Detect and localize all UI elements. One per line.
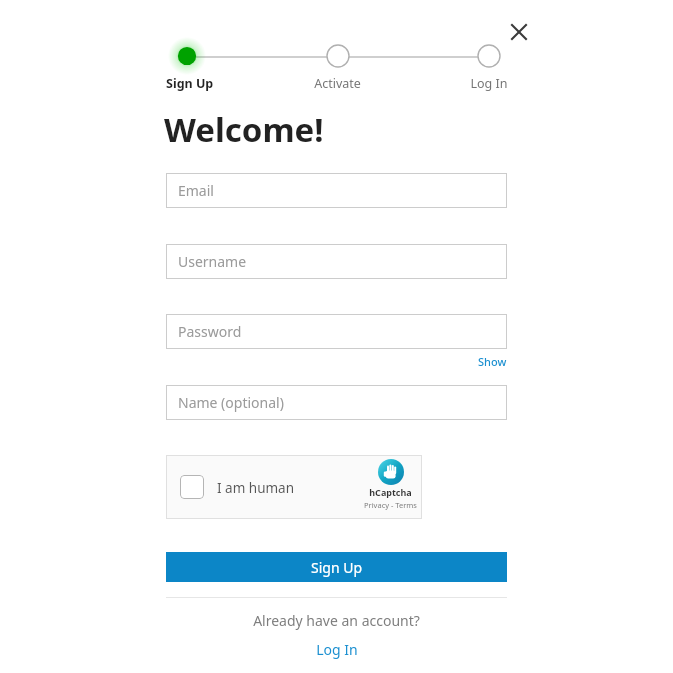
button[interactable]: Password xyxy=(166,314,507,349)
button[interactable]: Name (optional) xyxy=(166,385,507,420)
staticText: Password xyxy=(178,322,242,341)
staticText: Privacy - Terms xyxy=(364,500,417,510)
staticText: Welcome! xyxy=(164,107,324,152)
staticText: Already have an account? xyxy=(253,611,420,630)
button[interactable]: Email xyxy=(166,173,507,208)
button[interactable]: Show xyxy=(466,352,507,370)
button[interactable]: Sign Up xyxy=(166,37,226,95)
button[interactable]: Close xyxy=(503,16,535,48)
staticText: Name (optional) xyxy=(178,393,284,412)
button[interactable]: Sign Up xyxy=(166,552,507,582)
button[interactable]: Log In xyxy=(290,639,383,660)
button[interactable]: Log In xyxy=(444,44,534,95)
button[interactable]: Activate xyxy=(292,44,382,95)
button[interactable]: hCaptcha xyxy=(362,459,418,515)
staticText: Email xyxy=(178,181,214,200)
staticText: Log In xyxy=(316,640,358,659)
staticText: Show xyxy=(478,354,507,369)
button[interactable]: Username xyxy=(166,244,507,279)
staticText: Log In xyxy=(470,75,508,92)
staticText: Username xyxy=(178,252,247,271)
staticText: Sign Up xyxy=(166,75,214,92)
staticText: I am human xyxy=(217,479,295,497)
staticText: Sign Up xyxy=(311,558,363,577)
button[interactable]: I am human checkbox xyxy=(180,475,204,499)
staticText: Activate xyxy=(314,75,361,92)
staticText: hCaptcha xyxy=(369,486,412,498)
